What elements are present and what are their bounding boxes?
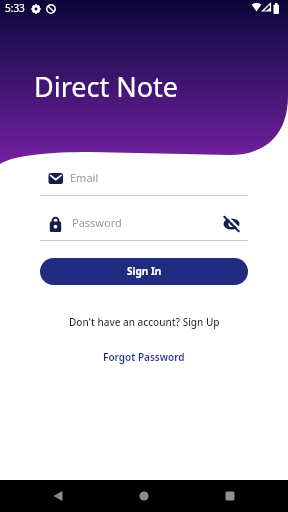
button[interactable] bbox=[210, 480, 250, 512]
button[interactable] bbox=[38, 480, 78, 512]
staticText: Password bbox=[72, 215, 122, 230]
staticText: Sign In bbox=[127, 264, 162, 278]
staticText: Forgot Password bbox=[103, 350, 185, 364]
staticText: 5:33 bbox=[5, 1, 25, 15]
button[interactable] bbox=[124, 480, 164, 512]
button[interactable]: Sign In bbox=[40, 258, 248, 285]
button[interactable]: Email bbox=[40, 165, 248, 196]
staticText: Don't have an account? Sign Up bbox=[69, 315, 220, 329]
button[interactable] bbox=[218, 212, 244, 236]
button[interactable]: Forgot Password bbox=[0, 346, 288, 368]
staticText: Direct Note bbox=[34, 68, 179, 105]
button[interactable]: Don't have an account? Sign Up bbox=[0, 311, 288, 333]
staticText: Email bbox=[70, 170, 99, 185]
button[interactable]: Password bbox=[40, 210, 248, 241]
